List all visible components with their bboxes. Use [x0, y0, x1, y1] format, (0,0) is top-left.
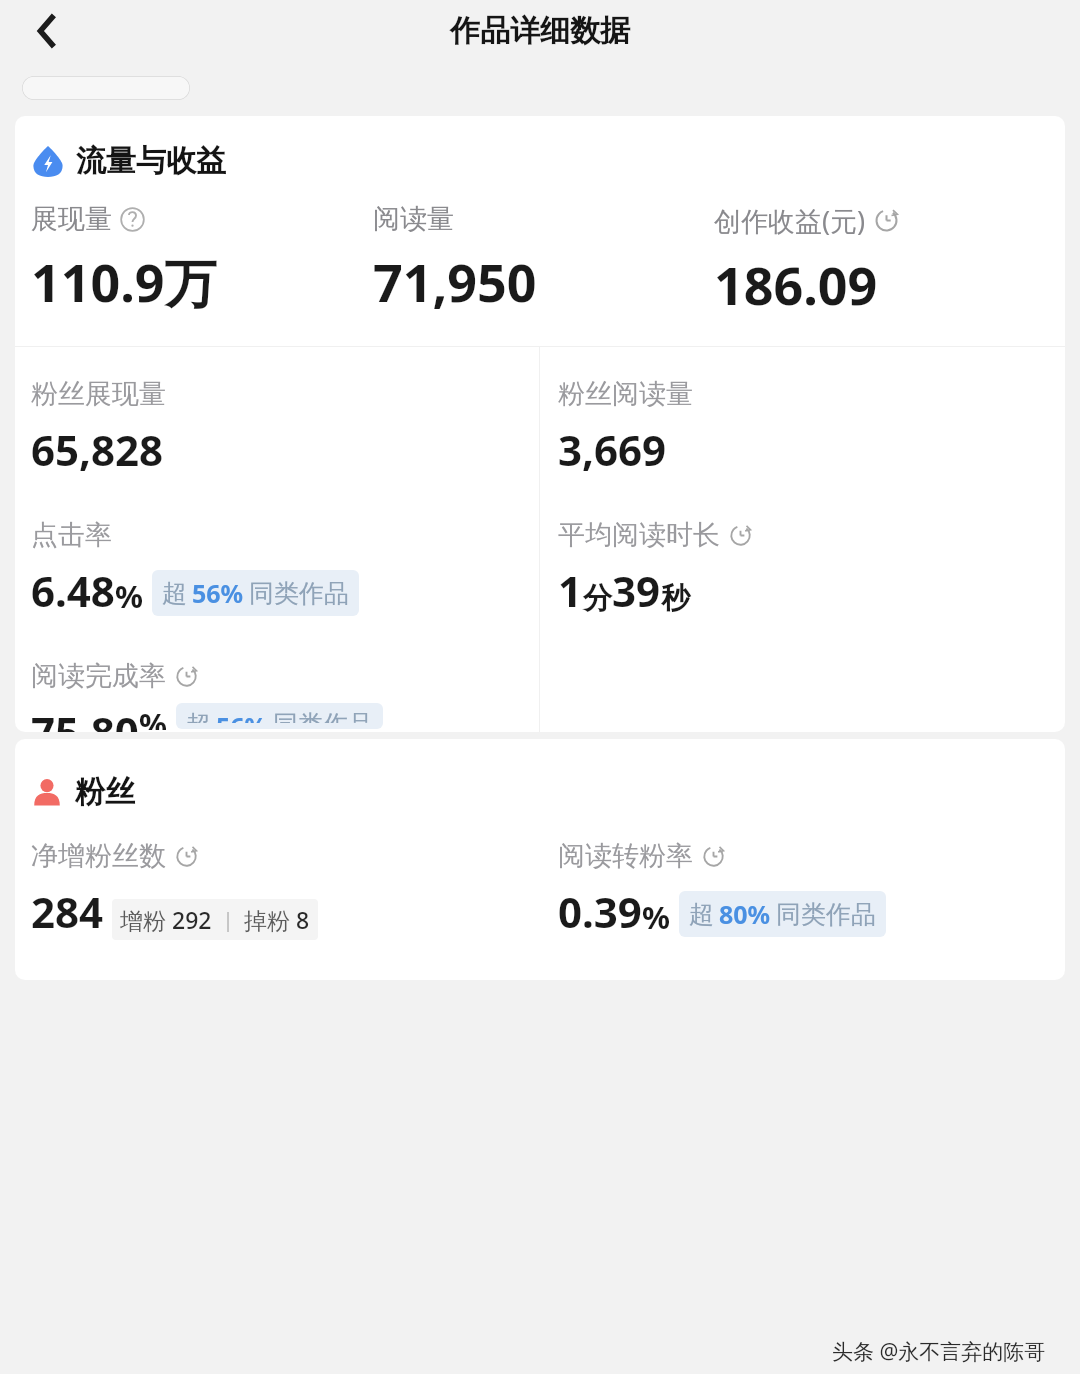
staticText: 掉粉 [244, 904, 296, 935]
staticText: | [212, 906, 244, 933]
staticText: 同类作品 [776, 899, 876, 930]
button[interactable]: 粉丝展现量 [31, 377, 166, 478]
staticText: % [115, 575, 143, 617]
staticText: 80% [719, 897, 771, 931]
staticText: 超 [162, 578, 187, 609]
staticText: 阅读转粉率 [558, 839, 693, 873]
staticText: 56% [216, 709, 268, 723]
button[interactable]: 粉丝阅读量 [558, 377, 693, 478]
button[interactable]: 展现量 [31, 202, 373, 317]
staticText: 超 [186, 709, 211, 723]
staticText: 粉丝展现量 [31, 377, 166, 411]
staticText: 阅读完成率 [31, 659, 166, 693]
staticText: 0.39 [558, 883, 642, 940]
staticText: 284 [31, 883, 104, 940]
staticText: 流量与收益 [76, 142, 226, 180]
staticText: 粉丝 [75, 773, 135, 811]
staticText: 110.9万 [31, 246, 217, 317]
staticText: 分 [583, 580, 612, 617]
staticText: 6.48 [31, 562, 115, 619]
button[interactable]: 阅读量 [373, 202, 714, 317]
staticText: 292 [172, 904, 212, 935]
staticText: 65,828 [31, 421, 164, 478]
staticText: 超 [689, 899, 714, 930]
staticText: 头条 @永不言弃的陈哥 [832, 1337, 1046, 1366]
button[interactable]: Back [18, 5, 70, 57]
button[interactable]: 流量与收益 [31, 142, 226, 180]
button[interactable]: 创作收益(元) [714, 202, 1055, 320]
staticText: 同类作品 [249, 578, 349, 609]
staticText: 39 [612, 562, 661, 619]
staticText: 186.09 [714, 249, 878, 320]
staticText: 秒 [661, 580, 690, 617]
staticText: 8 [296, 904, 310, 935]
staticText: % [642, 896, 670, 938]
button[interactable]: 阅读完成率 [31, 659, 383, 732]
staticText: 作品详细数据 [450, 12, 630, 50]
staticText: 1 [558, 562, 583, 619]
staticText: 平均阅读时长 [558, 518, 720, 552]
staticText: 点击率 [31, 518, 112, 552]
staticText: 阅读量 [373, 202, 454, 236]
button[interactable]: 平均阅读时长 [558, 518, 753, 619]
staticText: 56% [192, 576, 244, 610]
button[interactable]: 点击率 [31, 518, 359, 619]
staticText: 3,669 [558, 421, 667, 478]
staticText: 同类作品 [273, 709, 373, 723]
button[interactable]: 粉丝 [31, 773, 135, 811]
staticText: 粉丝阅读量 [558, 377, 693, 411]
staticText: 展现量 [31, 202, 112, 236]
staticText: 75.80 [31, 703, 139, 732]
staticText: 71,950 [373, 246, 537, 317]
staticText: 净增粉丝数 [31, 839, 166, 873]
staticText: 增粉 [120, 904, 172, 935]
staticText: 创作收益(元) [714, 202, 866, 239]
staticText: % [139, 703, 167, 730]
